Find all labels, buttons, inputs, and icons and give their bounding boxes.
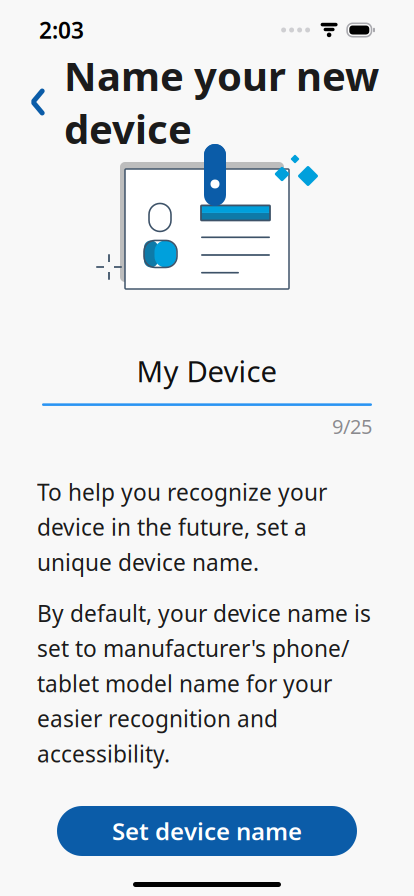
- staticText: Set device name: [112, 815, 302, 847]
- staticText: Name your new device: [64, 49, 379, 155]
- button[interactable]: Back: [18, 80, 58, 124]
- staticText: 9/25: [332, 413, 372, 439]
- staticText: By default, your device name is set to m…: [37, 598, 371, 769]
- staticText: 2:03: [39, 15, 84, 45]
- staticText: To help you recognize your device in the…: [37, 477, 327, 577]
- button[interactable]: Set device name: [57, 806, 357, 856]
- staticText: My Device: [136, 351, 277, 390]
